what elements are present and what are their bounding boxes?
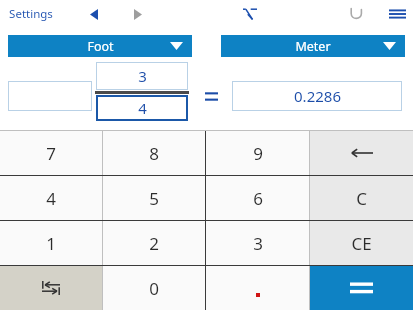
- staticText: C: [356, 187, 367, 210]
- button[interactable]: Backspace: [310, 131, 413, 175]
- button[interactable]: Decimal point: [206, 266, 309, 310]
- button[interactable]: Back: [82, 2, 106, 26]
- staticText: 5: [149, 187, 159, 210]
- button[interactable]: 9: [206, 131, 309, 175]
- button[interactable]: 0: [103, 266, 205, 310]
- staticText: 7: [46, 142, 56, 165]
- button[interactable]: Foot: [8, 35, 192, 57]
- staticText: Settings: [9, 6, 53, 22]
- staticText: 2: [149, 232, 159, 255]
- button[interactable]: Undo: [343, 1, 369, 27]
- button[interactable]: Meter: [221, 35, 405, 57]
- staticText: 3: [253, 232, 263, 255]
- button[interactable]: 1: [0, 221, 102, 265]
- staticText: 6: [253, 187, 263, 210]
- button[interactable]: 6: [206, 176, 309, 220]
- staticText: 9: [253, 142, 263, 165]
- button[interactable]: 3: [96, 62, 188, 90]
- staticText: CE: [351, 232, 372, 255]
- button[interactable]: 7: [0, 131, 102, 175]
- staticText: 3: [138, 66, 147, 86]
- button[interactable]: 0.2286: [232, 81, 402, 111]
- staticText: 1: [46, 232, 56, 255]
- button[interactable]: Swap units: [0, 266, 102, 310]
- button[interactable]: Forward: [126, 2, 150, 26]
- button[interactable]: Options: [236, 0, 264, 28]
- staticText: 8: [149, 142, 159, 165]
- staticText: 0: [149, 277, 159, 300]
- button[interactable]: Equals: [310, 266, 413, 310]
- button[interactable]: Whole number: [8, 81, 92, 111]
- button[interactable]: Menu: [383, 0, 411, 28]
- staticText: 4: [138, 98, 147, 118]
- button[interactable]: 3: [206, 221, 309, 265]
- staticText: Foot: [87, 38, 114, 55]
- button[interactable]: 2: [103, 221, 205, 265]
- staticText: 4: [46, 187, 56, 210]
- button[interactable]: CE: [310, 221, 413, 265]
- staticText: 0.2286: [294, 86, 341, 106]
- button[interactable]: 4: [96, 95, 188, 121]
- button[interactable]: 5: [103, 176, 205, 220]
- staticText: Meter: [295, 38, 331, 55]
- button[interactable]: 8: [103, 131, 205, 175]
- button[interactable]: 4: [0, 176, 102, 220]
- button[interactable]: Settings: [4, 1, 58, 27]
- button[interactable]: C: [310, 176, 413, 220]
